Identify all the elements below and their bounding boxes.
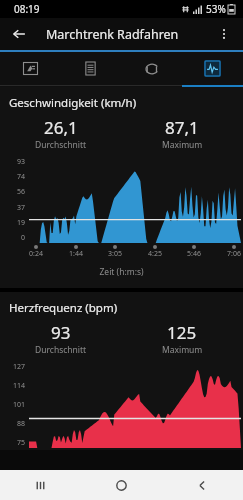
- staticText: Maximum: [162, 344, 203, 356]
- button[interactable]: Back: [6, 21, 32, 47]
- button[interactable]: Map: [0, 52, 60, 85]
- staticText: Marchtrenk Radfahren: [46, 26, 179, 43]
- staticText: 37: [17, 203, 26, 213]
- button[interactable]: Details: [60, 52, 121, 85]
- staticText: 127: [13, 362, 26, 372]
- staticText: 26,1: [44, 116, 78, 139]
- staticText: Zeit (h:m:s): [0, 266, 243, 278]
- staticText: 114: [13, 381, 26, 391]
- staticText: 3:05: [108, 249, 122, 259]
- staticText: 19: [17, 218, 26, 228]
- staticText: 4:25: [148, 249, 162, 259]
- staticText: 125: [167, 321, 197, 344]
- button[interactable]: Back: [162, 470, 243, 500]
- staticText: 88: [17, 419, 26, 429]
- staticText: 93: [51, 321, 71, 344]
- staticText: 0: [21, 233, 26, 243]
- button[interactable]: Charts: [182, 52, 243, 85]
- staticText: 7:06: [227, 249, 241, 259]
- button[interactable]: Laps: [121, 52, 182, 85]
- staticText: 1:44: [69, 249, 83, 259]
- staticText: Geschwindigkeit (km/h): [9, 95, 137, 111]
- staticText: Durchschnitt: [35, 344, 87, 356]
- button[interactable]: Recent apps: [0, 470, 81, 500]
- staticText: Maximum: [162, 139, 203, 151]
- staticText: 08:19: [14, 2, 40, 16]
- staticText: 101: [13, 400, 26, 410]
- staticText: Herzfrequenz (bpm): [9, 300, 118, 316]
- staticText: 53%: [206, 2, 226, 16]
- staticText: 74: [17, 172, 26, 182]
- staticText: Durchschnitt: [35, 139, 87, 151]
- staticText: 75: [17, 438, 26, 448]
- button[interactable]: More options: [211, 21, 237, 47]
- staticText: 87,1: [165, 116, 199, 139]
- button[interactable]: Home: [81, 470, 162, 500]
- staticText: 0:24: [29, 249, 43, 259]
- staticText: 5:46: [187, 249, 201, 259]
- staticText: 93: [17, 157, 26, 167]
- staticText: 56: [17, 187, 26, 197]
